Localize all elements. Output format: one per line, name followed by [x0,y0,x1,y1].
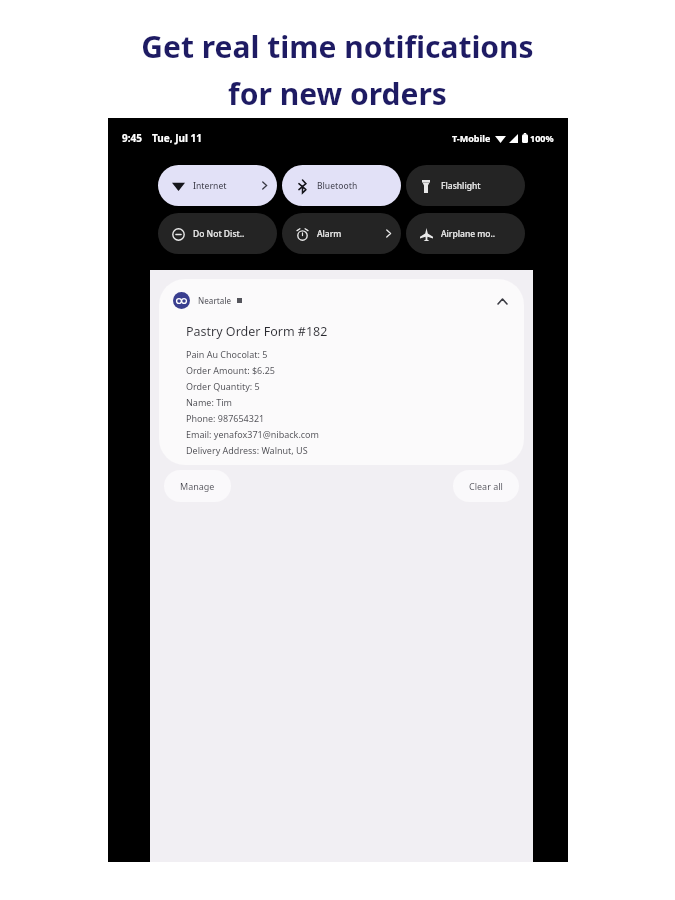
staticText: Manage [180,480,215,492]
button[interactable]: Do Not Dist.. [158,213,277,254]
staticText: Get real time notifications [141,26,534,67]
button[interactable]: Neartale [159,279,524,465]
button[interactable]: Alarm [282,213,401,254]
staticText: Pastry Order Form #182 [186,323,328,340]
staticText: Do Not Dist.. [193,228,245,240]
staticText: Alarm [317,228,342,240]
staticText: 100% [530,132,554,144]
staticText: Phone: 987654321 [186,412,265,424]
button[interactable]: Manage [164,470,231,502]
staticText: Order Amount: $6.25 [186,364,275,376]
button[interactable]: Internet [158,165,277,206]
staticText: Airplane mo.. [441,228,496,240]
button[interactable]: Bluetooth [282,165,401,206]
staticText: Tue, Jul 11 [152,131,203,145]
staticText: for new orders [228,73,447,114]
staticText: Clear all [469,480,503,492]
button[interactable]: Airplane mo.. [406,213,525,254]
staticText: Flashlight [441,180,481,192]
button[interactable]: Flashlight [406,165,525,206]
staticText: Delivery Address: Walnut, US [186,444,308,456]
staticText: Neartale [198,295,232,306]
staticText: Bluetooth [317,180,358,192]
button[interactable]: Collapse notification [494,293,510,309]
staticText: Name: Tim [186,396,232,408]
button[interactable]: Clear all [453,470,519,502]
staticText: T-Mobile [452,132,491,144]
staticText: Internet [193,180,227,192]
staticText: Pain Au Chocolat: 5 [186,348,268,360]
staticText: 9:45 [122,131,142,145]
staticText: Email: yenafox371@niback.com [186,428,319,440]
staticText: Order Quantity: 5 [186,380,260,392]
